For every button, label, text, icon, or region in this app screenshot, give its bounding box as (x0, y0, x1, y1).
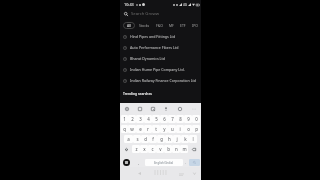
button[interactable]: t (152, 125, 160, 133)
button[interactable]: Backspace (188, 145, 200, 153)
button[interactable]: More (191, 170, 198, 177)
button[interactable]: 5 (152, 115, 160, 123)
button[interactable]: j (173, 135, 181, 143)
button[interactable]: u (168, 125, 176, 133)
button[interactable]: 8 (176, 115, 184, 123)
staticText: i (179, 126, 181, 132)
button[interactable]: Auto Performance Fibers Ltd (120, 42, 201, 53)
button[interactable]: v (156, 145, 164, 153)
staticText: . (185, 160, 187, 165)
button[interactable]: m (180, 145, 188, 153)
button[interactable]: 7 (168, 115, 176, 123)
button[interactable]: MF (168, 22, 175, 29)
button[interactable]: Keyboard tool 1 (120, 103, 133, 114)
staticText: All (127, 23, 131, 28)
staticText: 7 (171, 116, 174, 122)
button[interactable]: l (189, 135, 197, 143)
button[interactable]: 0 (192, 115, 200, 123)
staticText: m (182, 146, 187, 152)
staticText: o (187, 126, 190, 132)
button[interactable]: n (172, 145, 180, 153)
button[interactable]: Emoji (121, 159, 132, 166)
staticText: Bharat Dynamics Ltd (130, 56, 165, 61)
button[interactable]: k (181, 135, 189, 143)
staticText: 1 (123, 116, 126, 122)
button[interactable]: b (164, 145, 172, 153)
button[interactable]: Search (120, 8, 201, 19)
button[interactable]: y (160, 125, 168, 133)
button[interactable]: p (192, 125, 200, 133)
button[interactable]: h (165, 135, 173, 143)
button[interactable]: 1 (121, 115, 128, 123)
staticText: t (155, 126, 157, 132)
staticText: F&O (156, 23, 163, 28)
button[interactable]: Indian Railway Finance Corporation Ltd (120, 75, 201, 86)
staticText: j (176, 136, 178, 142)
button[interactable]: , (132, 159, 145, 166)
staticText: h (168, 136, 171, 142)
staticText: , (138, 160, 140, 165)
button[interactable]: i (176, 125, 184, 133)
staticText: 8 (179, 116, 182, 122)
staticText: 5 (155, 116, 158, 122)
staticText: u (171, 126, 174, 132)
button[interactable]: Indian Hume Pipe Company Ltd. (120, 64, 201, 75)
button[interactable]: s (133, 135, 141, 143)
button[interactable]: Back (136, 170, 142, 176)
button[interactable]: Home (153, 169, 168, 176)
staticText: MF (169, 23, 174, 28)
button[interactable]: F&O (155, 22, 164, 29)
button[interactable]: . (183, 159, 189, 166)
staticText: a (127, 136, 130, 142)
button[interactable]: Keyboard tool 4 (159, 103, 173, 114)
staticText: e (139, 126, 142, 132)
staticText: Trending searches (123, 92, 152, 96)
staticText: 0 (195, 116, 198, 122)
button[interactable]: a (124, 135, 133, 143)
button[interactable]: Shift (121, 145, 132, 153)
button[interactable]: English (India) (145, 159, 183, 166)
button[interactable]: Keyboard tool 5 (173, 103, 187, 114)
staticText: 9 (187, 116, 190, 122)
button[interactable]: x (140, 145, 148, 153)
staticText: f (152, 136, 154, 142)
staticText: Indian Railway Finance Corporation Ltd (130, 78, 197, 83)
button[interactable]: Keyboard tool 3 (146, 103, 159, 114)
staticText: x (143, 146, 146, 152)
button[interactable]: c (148, 145, 156, 153)
button[interactable]: Recent apps (177, 170, 185, 178)
staticText: Indian Hume Pipe Company Ltd. (130, 67, 185, 72)
button[interactable]: 9 (184, 115, 192, 123)
staticText: s (136, 136, 139, 142)
button[interactable]: Keyboard tool 2 (133, 103, 146, 114)
button[interactable]: f (149, 135, 157, 143)
button[interactable]: o (184, 125, 192, 133)
button[interactable]: e (136, 125, 144, 133)
staticText: c (151, 146, 154, 152)
button[interactable]: Hind Pipes and Fittings Ltd (120, 31, 201, 42)
button[interactable]: Search (189, 159, 200, 166)
button[interactable]: All (123, 22, 135, 29)
button[interactable]: IPO (191, 22, 199, 29)
button[interactable]: 4 (144, 115, 152, 123)
button[interactable]: Bharat Dynamics Ltd (120, 53, 201, 64)
button[interactable]: q (121, 125, 128, 133)
button[interactable]: g (157, 135, 165, 143)
button[interactable]: ETF (179, 22, 187, 29)
other: Search (123, 11, 129, 17)
button[interactable]: Stocks (138, 22, 151, 29)
button[interactable]: z (132, 145, 140, 153)
staticText: v (159, 146, 162, 152)
staticText: Stocks (139, 23, 150, 28)
button[interactable]: d (141, 135, 149, 143)
button[interactable]: 2 (128, 115, 136, 123)
staticText: ETF (180, 23, 186, 28)
button[interactable]: 3 (136, 115, 144, 123)
staticText: d (144, 136, 147, 142)
staticText: IPO (192, 23, 198, 28)
button[interactable]: w (128, 125, 136, 133)
button[interactable]: r (144, 125, 152, 133)
staticText: n (175, 146, 178, 152)
button[interactable]: 6 (160, 115, 168, 123)
